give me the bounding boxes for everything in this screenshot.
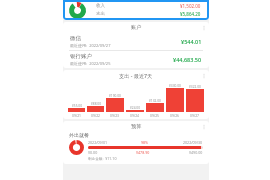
staticText: 09/27	[190, 113, 200, 118]
staticText: 09/22	[91, 113, 101, 118]
staticText: 09/23	[110, 113, 120, 118]
staticText: ¥132.00	[149, 99, 161, 103]
staticText: ¥322.00	[189, 85, 201, 89]
staticText: 09/24	[130, 113, 140, 118]
button[interactable]: More options for 账户	[199, 23, 209, 33]
button[interactable]: 收入	[63, 0, 209, 20]
staticText: 外出就餐	[69, 132, 89, 138]
staticText: ¥55.00	[72, 104, 82, 108]
staticText: 微信	[70, 35, 81, 42]
staticText: ¥0.00	[88, 150, 98, 155]
staticText: ¥1,502.00	[180, 3, 201, 9]
staticText: ¥544.01	[181, 38, 202, 45]
staticText: ¥190.00	[109, 94, 121, 98]
staticText: 收入	[96, 3, 105, 9]
staticText: 预算	[131, 123, 142, 130]
staticText: 2022/09/01	[88, 140, 108, 145]
staticText: 支出	[96, 11, 105, 17]
button[interactable]: 银行账户	[63, 51, 209, 68]
staticText: 2022/09/30	[183, 140, 203, 145]
staticText: ¥44,683.50	[173, 56, 202, 63]
staticText: 支出 - 最近7天	[119, 72, 153, 79]
button[interactable]: More options for 支出 - 最近7天	[199, 71, 209, 81]
staticText: ¥5,864.20	[180, 11, 201, 17]
staticText: 09/25	[150, 113, 160, 118]
button[interactable]: 微信	[63, 33, 209, 50]
staticText: 最近使用: 2022/09/25	[70, 61, 111, 66]
staticText: 银行账户	[70, 53, 92, 60]
staticText: ¥330.00	[169, 84, 181, 88]
staticText: 98%	[141, 140, 149, 145]
button[interactable]: More options for 预算	[199, 122, 209, 132]
staticText: 09/21	[72, 113, 82, 118]
staticText: 最近使用: 2022/09/27	[70, 43, 111, 48]
staticText: ¥24.00	[130, 106, 140, 110]
staticText: ¥490.00	[189, 150, 203, 155]
staticText: 09/26	[170, 113, 180, 118]
staticText: 账户	[131, 24, 142, 31]
staticText: ¥88.00	[91, 102, 101, 106]
staticText: ¥478.90	[136, 150, 150, 155]
staticText: 剩余金额: ¥11.10	[88, 156, 117, 161]
